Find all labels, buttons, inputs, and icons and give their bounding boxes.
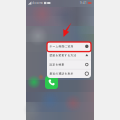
staticText: 壁紙を変更する方法 — [49, 54, 76, 57]
staticText: 9:41 — [80, 1, 87, 5]
button[interactable]: ホーム画面に追加 — [47, 42, 91, 51]
staticText: ホーム画面に追加 — [49, 45, 73, 48]
button[interactable]: Phone — [45, 76, 58, 89]
staticText: 最近の通話を表示 — [49, 72, 73, 75]
button[interactable]: 最近の通話を表示 — [47, 69, 91, 78]
button[interactable]: 設定を検索 — [47, 60, 91, 69]
staticText: 設定を検索 — [49, 63, 64, 66]
staticText: docomo — [32, 1, 43, 5]
button[interactable]: 壁紙を変更する方法 — [47, 51, 91, 60]
